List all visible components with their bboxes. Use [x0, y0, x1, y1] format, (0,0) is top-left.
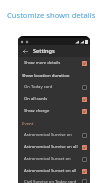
button[interactable]: On Today card [18, 81, 90, 93]
staticText: On Today card [24, 84, 53, 90]
button[interactable]: Astronomical Sunrise on all cards [18, 141, 90, 153]
button[interactable]: On all cards [18, 93, 90, 105]
staticText: Astronomical Sunrise on Today card [24, 132, 80, 138]
button[interactable]: Back [20, 46, 30, 56]
staticText: Show charge [24, 108, 50, 114]
staticText: Astronomical Sunset on Today card [24, 156, 80, 162]
button[interactable]: Show charge [18, 105, 90, 117]
staticText: Astronomical Sunrise on all cards [24, 144, 80, 150]
staticText: Civil Sunrise on Today card [24, 179, 77, 183]
staticText: Show more details [24, 60, 61, 66]
staticText: Customize shown details [7, 10, 96, 20]
button[interactable]: Show more details [18, 57, 90, 69]
button[interactable]: Astronomical Sunrise on Today card [18, 129, 90, 141]
staticText: On all cards [24, 96, 48, 102]
button[interactable]: Astronomical Sunset on all cards [18, 165, 90, 177]
button[interactable]: Civil Sunrise on Today card [18, 177, 90, 183]
staticText: Event [22, 120, 34, 126]
button[interactable]: Astronomical Sunset on Today card [18, 153, 90, 165]
staticText: Astronomical Sunset on all cards [24, 168, 80, 174]
staticText: Show location duration [22, 72, 70, 78]
staticText: Settings [33, 47, 55, 55]
